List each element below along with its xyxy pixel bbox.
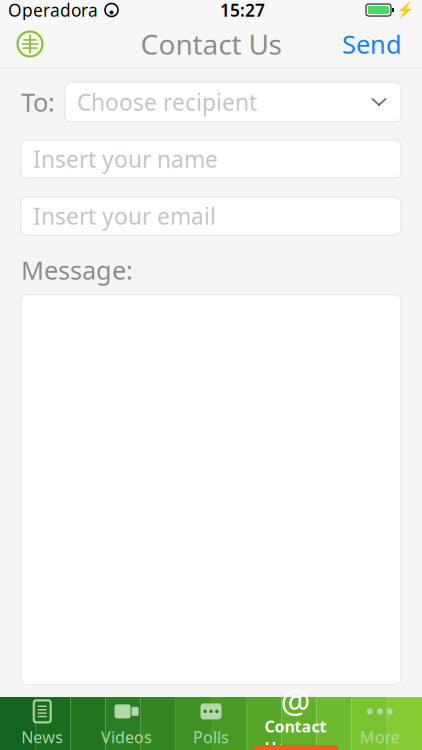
staticText: Send <box>342 27 402 61</box>
button[interactable]: Insert your name <box>21 140 401 178</box>
button[interactable]: Videos <box>84 697 169 750</box>
staticText: Insert your email <box>33 201 216 231</box>
button[interactable]: News <box>0 697 84 750</box>
button[interactable]: Send <box>330 24 414 64</box>
button[interactable]: Choose recipient <box>65 82 401 122</box>
staticText: Contact Us <box>140 25 281 63</box>
staticText: Insert your name <box>33 144 218 174</box>
staticText: Polls <box>193 726 229 748</box>
staticText: More <box>360 726 400 748</box>
staticText: News <box>21 726 63 748</box>
button[interactable]: Polls <box>169 697 253 750</box>
staticText: To: <box>21 85 55 119</box>
staticText: Choose recipient <box>77 87 257 117</box>
staticText: Message: <box>21 253 133 287</box>
button[interactable]: @ <box>253 697 338 750</box>
staticText: Videos <box>101 726 152 748</box>
button[interactable]: Insert your email <box>21 197 401 235</box>
staticText: ⚡ <box>396 2 414 18</box>
staticText: 15:27 <box>220 0 265 21</box>
staticText: Contact Us <box>264 716 326 750</box>
button[interactable]: More <box>338 697 422 750</box>
staticText: Operadora <box>8 0 98 21</box>
staticText: @ <box>280 679 310 723</box>
button[interactable]: Home <box>8 24 52 64</box>
